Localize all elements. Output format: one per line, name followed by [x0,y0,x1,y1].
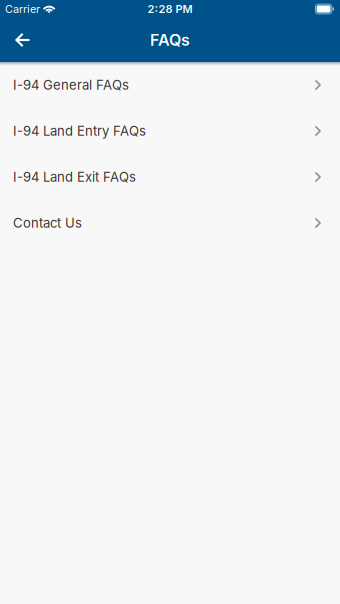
staticText: I-94 Land Exit FAQs [13,169,136,185]
staticText: 2:28 PM [147,2,192,16]
button[interactable]: I-94 Land Entry FAQs [0,108,340,154]
staticText: FAQs [150,30,190,50]
button[interactable]: Contact Us [0,200,340,246]
button[interactable]: Back [0,18,46,62]
staticText: I-94 General FAQs [13,77,129,93]
button[interactable]: I-94 General FAQs [0,62,340,108]
button[interactable]: I-94 Land Exit FAQs [0,154,340,200]
staticText: Contact Us [13,215,82,231]
staticText: Carrier [5,2,40,16]
staticText: I-94 Land Entry FAQs [13,123,146,139]
